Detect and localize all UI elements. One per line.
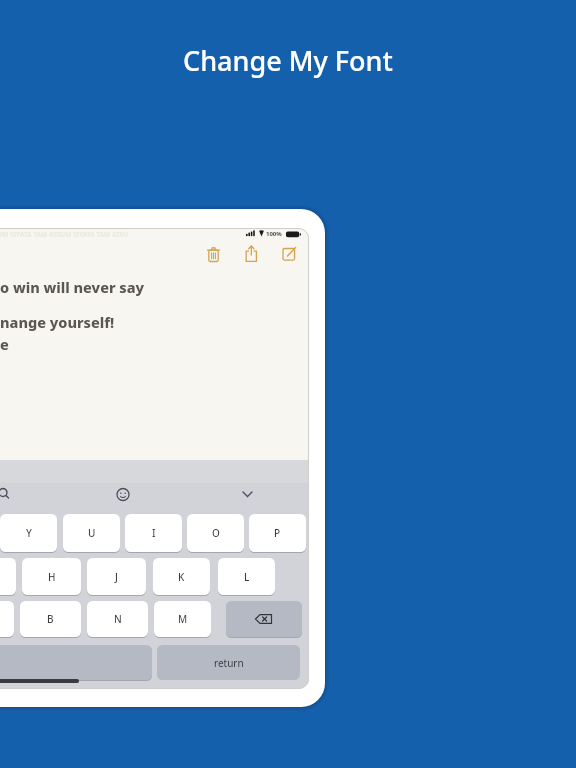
staticText: H: [48, 570, 56, 584]
button[interactable]: J: [87, 558, 146, 595]
staticText: e: [0, 334, 9, 354]
staticText: 100%: [266, 230, 282, 238]
staticText: K: [178, 570, 185, 584]
staticText: I: [152, 526, 156, 540]
button[interactable]: O: [187, 514, 244, 552]
button[interactable]: N: [87, 601, 148, 637]
button[interactable]: [0, 601, 14, 637]
button[interactable]: M: [154, 601, 211, 637]
staticText: N: [114, 612, 122, 626]
button[interactable]: L: [218, 558, 275, 595]
staticText: O: [212, 526, 220, 540]
button[interactable]: [0, 558, 16, 595]
staticText: o win will never say: [0, 277, 145, 297]
button[interactable]: [226, 601, 302, 637]
button[interactable]: I: [125, 514, 182, 552]
staticText: M: [178, 612, 188, 626]
staticText: U: [88, 526, 96, 540]
button[interactable]: [280, 244, 298, 264]
button[interactable]: [205, 244, 222, 264]
button[interactable]: B: [20, 601, 81, 637]
staticText: Y: [26, 526, 32, 540]
staticText: IAM AIXUM SIYATA TAM AIXUM SIYATA TAM AI…: [0, 230, 129, 239]
staticText: Change My Font: [183, 42, 393, 79]
button[interactable]: [0, 645, 152, 680]
staticText: L: [244, 570, 250, 584]
button[interactable]: return: [157, 645, 300, 680]
staticText: J: [115, 570, 118, 584]
button[interactable]: Y: [0, 514, 57, 552]
button[interactable]: P: [249, 514, 306, 552]
button[interactable]: [243, 244, 261, 264]
button[interactable]: K: [153, 558, 210, 595]
button[interactable]: U: [63, 514, 120, 552]
button[interactable]: H: [22, 558, 81, 595]
staticText: P: [274, 526, 281, 540]
staticText: B: [47, 612, 54, 626]
staticText: return: [214, 656, 244, 670]
staticText: nange yourself!: [0, 312, 115, 332]
